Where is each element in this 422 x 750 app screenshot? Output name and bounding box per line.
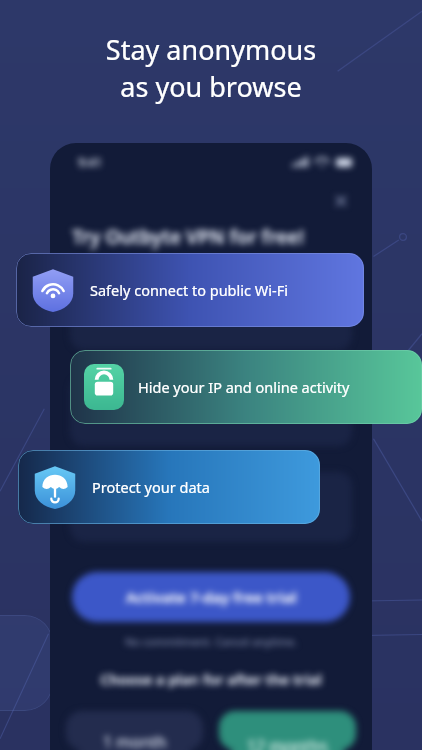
staticText: Safely connect to public Wi-Fi [90,280,288,300]
button[interactable]: 12 months [219,711,356,750]
staticText: No commitment. Cancel anytime. [50,634,372,649]
button[interactable]: Close [330,190,352,212]
button[interactable]: Hide your IP and online activity [70,350,422,424]
button[interactable]: Safely connect to public Wi-Fi [16,253,364,327]
staticText: 1 month [103,731,167,750]
button[interactable]: Protect your data [18,450,320,524]
staticText: 12 months [247,735,328,750]
staticText: Try Outbyte VPN for free! [72,224,304,250]
staticText: 9:41 [78,154,102,170]
staticText: Activate 7-day free trial [126,587,297,607]
staticText: Choose a plan for after the trial [50,669,372,689]
staticText: Protect your data [92,477,210,497]
button[interactable]: 1 month [66,711,203,750]
button[interactable]: Activate 7-day free trial [72,572,350,622]
staticText: Stay anonymous as you browse [0,31,422,105]
staticText: Hide your IP and online activity [138,377,350,397]
